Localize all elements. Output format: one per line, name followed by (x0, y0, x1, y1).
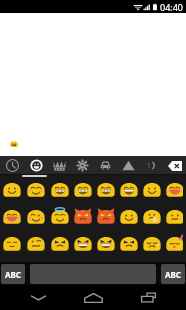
button[interactable]: Emoji sleeping (163, 229, 186, 256)
staticText: ABC (165, 269, 181, 280)
button[interactable]: Emoji grin (94, 175, 117, 202)
button[interactable]: Emoji angry (117, 229, 140, 256)
button[interactable]: ABC (1, 264, 25, 284)
button[interactable]: Emoji open laugh (163, 175, 186, 202)
button[interactable]: Smileys (24, 156, 48, 175)
button[interactable]: Emoji angel (48, 202, 71, 229)
button[interactable]: Places (117, 156, 140, 175)
button[interactable]: Back (21, 285, 55, 310)
button[interactable]: Emoji laugh (117, 175, 140, 202)
staticText: ABC (5, 269, 21, 280)
button[interactable]: Emoji thinking (140, 202, 163, 229)
button[interactable]: Emoji smile (0, 175, 24, 202)
button[interactable]: Emoji sad (140, 229, 163, 256)
button[interactable]: Emoji grin (71, 175, 94, 202)
button[interactable]: Emoji open laugh (0, 202, 24, 229)
staticText: 04:40 (160, 1, 184, 13)
button[interactable]: Emoji furious (71, 229, 94, 256)
button[interactable]: Emoji blush (24, 175, 48, 202)
button[interactable]: Home (76, 285, 110, 310)
button[interactable]: ABC (161, 264, 185, 284)
button[interactable]: Nature (71, 156, 94, 175)
button[interactable]: Backspace (163, 156, 186, 175)
button[interactable]: Emoji smile (117, 202, 140, 229)
button[interactable]: Emoji devil (71, 202, 94, 229)
button[interactable]: Emoji smile (140, 175, 163, 202)
button[interactable]: Objects (94, 156, 117, 175)
button[interactable]: Emoji neutral (163, 202, 186, 229)
button[interactable]: Emoji confused (24, 229, 48, 256)
button[interactable]: Emoji angry (48, 229, 71, 256)
button[interactable]: Emoji grin (48, 175, 71, 202)
button[interactable]: People (48, 156, 71, 175)
button[interactable]: Emoji furious (94, 229, 117, 256)
button[interactable]: Recent (0, 156, 24, 175)
button[interactable]: Emoticons (140, 156, 163, 175)
button[interactable]: Emoji devil (94, 202, 117, 229)
button[interactable]: Emoji expressionless (0, 229, 24, 256)
button[interactable]: Recents (131, 285, 165, 310)
button[interactable]: Emoji wink (24, 202, 48, 229)
